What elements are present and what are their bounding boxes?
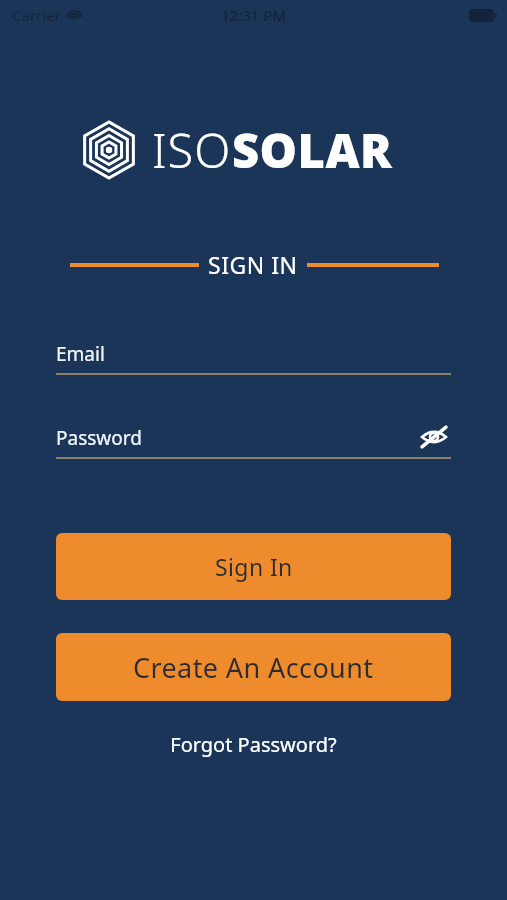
staticText: SIGN IN	[208, 249, 298, 280]
button[interactable]: Forgot Password?	[56, 728, 451, 760]
button[interactable]: Create An Account	[56, 633, 451, 701]
staticText: Sign In	[215, 551, 293, 582]
staticText: Email	[56, 341, 105, 367]
staticText: Create An Account	[133, 649, 374, 686]
staticText: SOLAR	[232, 118, 393, 182]
staticText: Forgot Password?	[170, 731, 337, 758]
button[interactable]: Show password	[417, 421, 451, 455]
staticText: Carrier	[12, 5, 61, 25]
button[interactable]: Sign In	[56, 533, 451, 600]
staticText: 12:31 PM	[221, 5, 287, 25]
button[interactable]: Password	[56, 419, 451, 457]
button[interactable]: Email	[56, 335, 451, 373]
staticText: Password	[56, 425, 142, 451]
staticText: ISO	[152, 118, 232, 182]
